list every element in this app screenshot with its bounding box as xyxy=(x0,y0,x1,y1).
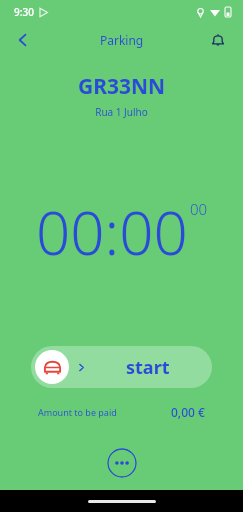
staticText: Amount to be paid xyxy=(38,406,117,418)
staticText: start xyxy=(126,355,170,380)
staticText: GR33NN xyxy=(0,72,243,101)
staticText: Parking xyxy=(100,32,144,48)
button[interactable]: Notifications xyxy=(201,24,235,56)
button[interactable]: Back xyxy=(6,24,40,56)
staticText: 0,00 € xyxy=(171,404,205,420)
button[interactable]: More options xyxy=(107,448,137,478)
staticText: 00 xyxy=(190,199,208,219)
button[interactable]: start xyxy=(31,346,212,388)
staticText: 00:00 xyxy=(36,191,188,273)
staticText: Rua 1 Julho xyxy=(0,105,243,119)
staticText: 9:30 xyxy=(14,5,34,19)
